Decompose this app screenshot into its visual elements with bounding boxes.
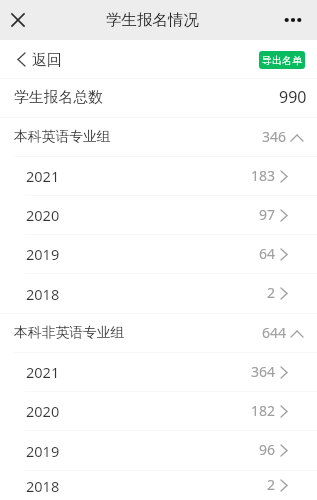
button[interactable]: 本科非英语专业组 <box>0 314 317 352</box>
staticText: 2021 <box>26 362 60 382</box>
staticText: 本科非英语专业组 <box>14 324 125 341</box>
button[interactable]: 2018 <box>0 471 317 500</box>
staticText: 2020 <box>26 205 60 225</box>
button[interactable]: 本科英语专业组 <box>0 118 317 156</box>
staticText: 2019 <box>26 244 60 264</box>
button[interactable]: 2019 <box>0 431 317 470</box>
staticText: 183 <box>251 166 276 185</box>
staticText: 346 <box>262 127 287 146</box>
staticText: 990 <box>279 86 307 108</box>
staticText: 182 <box>251 401 276 420</box>
button[interactable]: 2020 <box>0 196 317 234</box>
staticText: 本科英语专业组 <box>14 128 111 145</box>
staticText: 2 <box>267 283 276 302</box>
button[interactable]: 学生报名总数 <box>0 79 317 117</box>
button[interactable]: 2021 <box>0 353 317 391</box>
staticText: 2018 <box>26 476 60 496</box>
staticText: 2018 <box>26 284 60 304</box>
staticText: 返回 <box>32 51 62 70</box>
button[interactable]: 2018 <box>0 274 317 313</box>
button[interactable]: Close <box>0 2 36 38</box>
staticText: 2020 <box>26 401 60 421</box>
button[interactable]: 2020 <box>0 392 317 430</box>
staticText: 导出名单 <box>262 54 302 67</box>
staticText: 96 <box>259 440 276 459</box>
button[interactable]: 2021 <box>0 157 317 195</box>
staticText: 97 <box>259 205 276 224</box>
staticText: 2 <box>267 475 276 494</box>
button[interactable]: 2019 <box>0 235 317 273</box>
staticText: 364 <box>251 362 276 381</box>
staticText: 644 <box>262 323 287 342</box>
staticText: 64 <box>259 244 276 263</box>
button[interactable]: More options <box>275 2 311 38</box>
staticText: 学生报名总数 <box>14 88 103 107</box>
button[interactable]: 返回 <box>0 44 72 75</box>
staticText: 2021 <box>26 166 60 186</box>
button[interactable]: 导出名单 <box>259 51 305 69</box>
staticText: 2019 <box>26 441 60 461</box>
staticText: 学生报名情况 <box>106 10 199 30</box>
